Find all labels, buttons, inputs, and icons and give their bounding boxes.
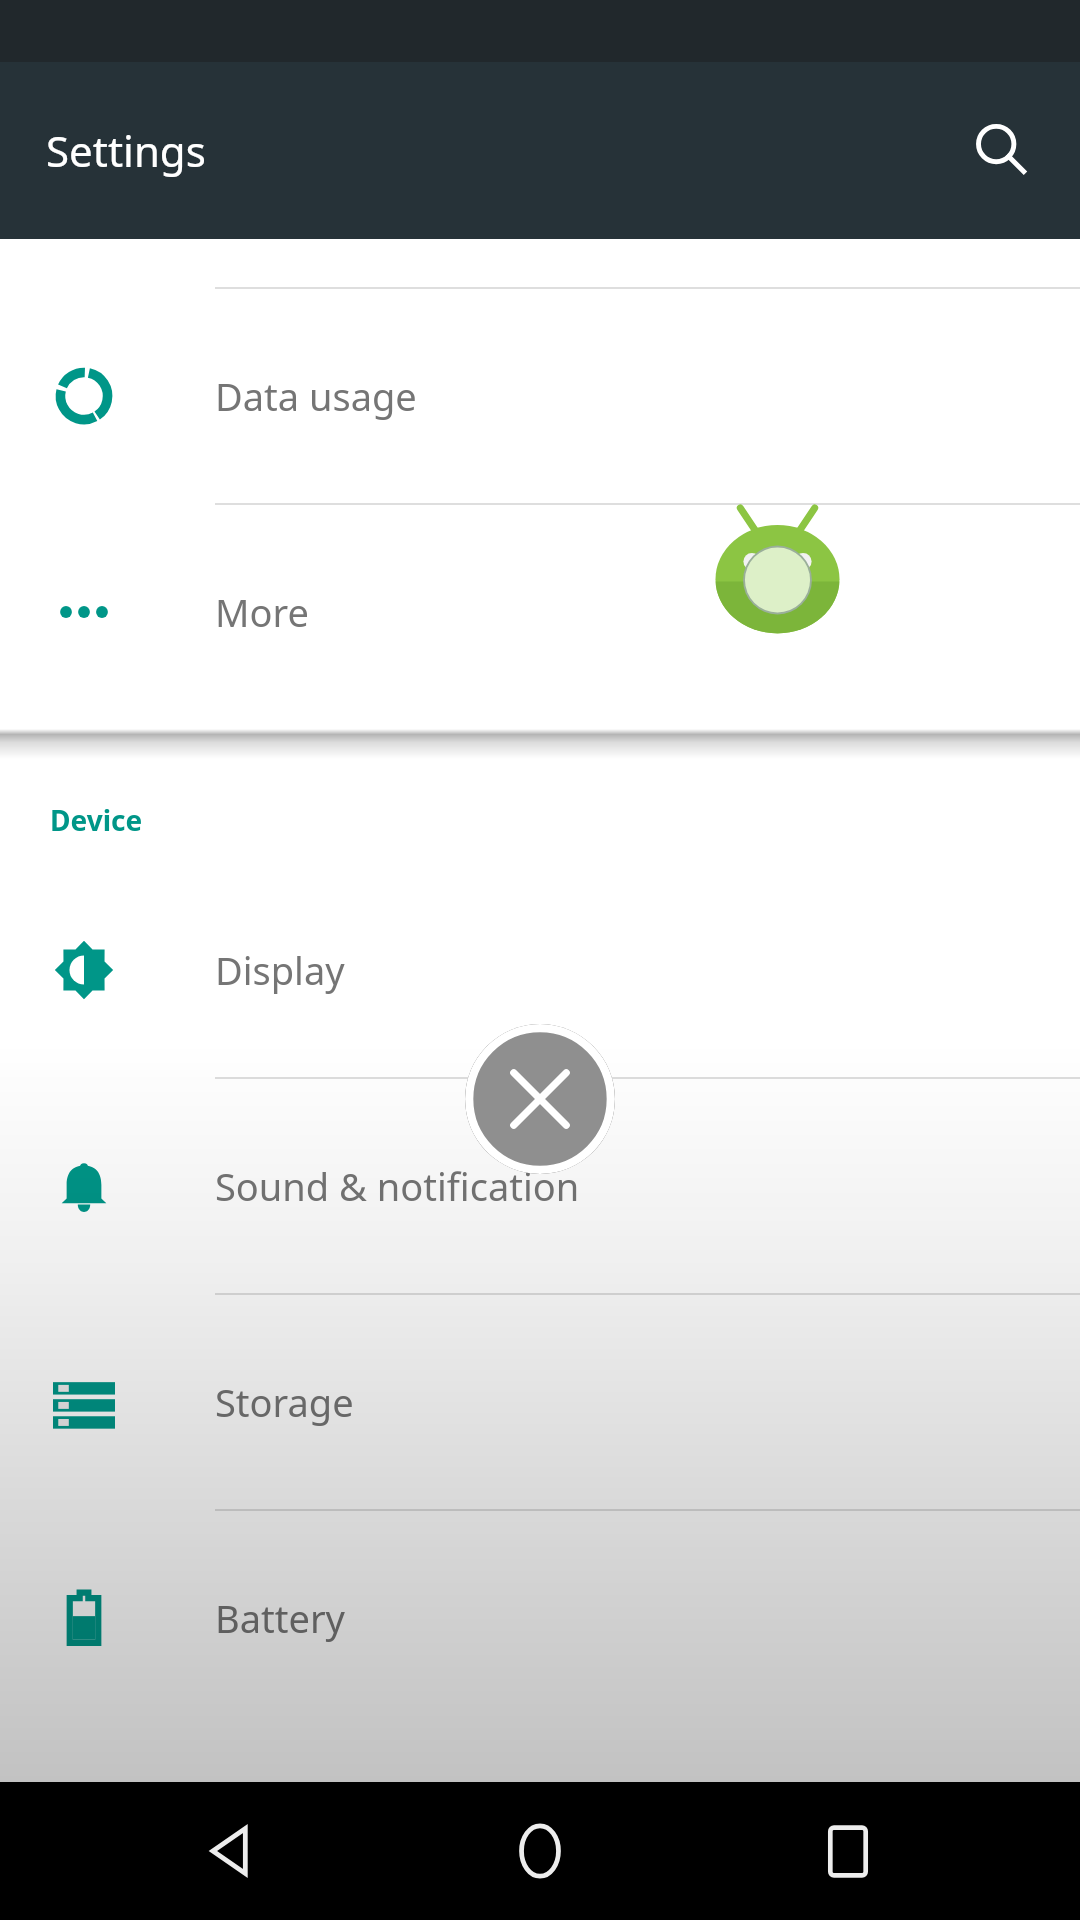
button[interactable]: Display [0,863,1080,1077]
button[interactable]: Battery [0,1511,1080,1725]
staticText: Data usage [215,370,417,422]
button[interactable]: Close [465,1024,615,1174]
staticText: More [215,586,309,638]
button[interactable]: Home [465,1782,615,1920]
staticText: Device [50,801,143,839]
staticText: Battery [215,1592,345,1644]
staticText: Display [215,944,345,996]
button[interactable]: Data usage [0,289,1080,503]
button[interactable]: Search [954,103,1050,199]
button[interactable]: Sound & notification [0,1079,1080,1293]
button[interactable]: Recent apps [773,1782,923,1920]
button[interactable]: More [0,505,1080,719]
button[interactable]: Storage [0,1295,1080,1509]
button[interactable]: Back [158,1782,308,1920]
staticText: Settings [46,122,206,179]
staticText: Sound & notification [215,1160,580,1212]
staticText: Storage [215,1376,354,1428]
